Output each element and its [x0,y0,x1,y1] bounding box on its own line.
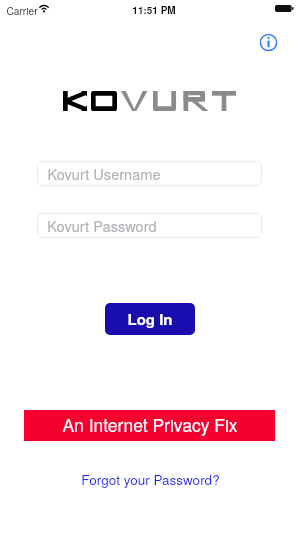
staticText: Carrier [6,3,38,18]
button[interactable]: Information [257,31,280,54]
staticText: An Internet Privacy Fix [62,412,238,437]
staticText: Kovurt Password [47,215,157,236]
button[interactable]: Log In [105,303,195,335]
button[interactable]: Forgot your Password? [75,467,226,492]
staticText: Log In [127,308,173,329]
staticText: Kovurt Username [47,163,161,184]
staticText: Forgot your Password? [81,470,220,489]
button[interactable]: An Internet Privacy Fix [24,410,275,441]
staticText: 11:51 PM [132,3,176,17]
button[interactable]: Kovurt Password [37,213,262,238]
button[interactable]: Kovurt Username [37,161,262,186]
